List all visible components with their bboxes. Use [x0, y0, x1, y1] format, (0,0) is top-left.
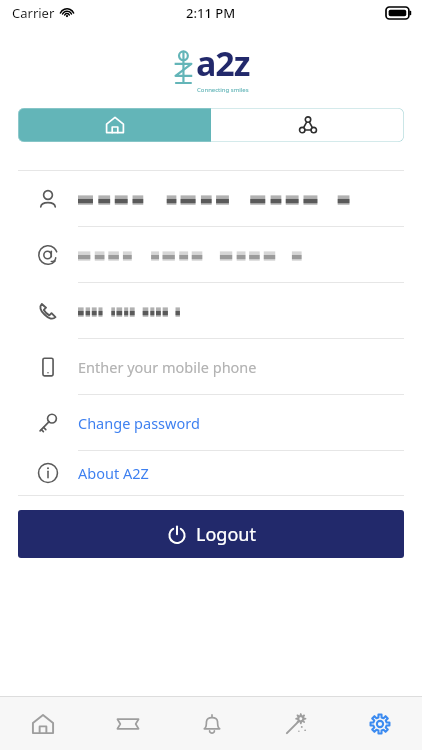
button[interactable]: Home	[0, 697, 85, 750]
staticText: Change password	[78, 413, 200, 433]
button[interactable]: Notifications	[170, 697, 254, 750]
staticText: Enther your mobile phone	[78, 357, 257, 377]
button[interactable]: Mobile phone	[18, 339, 404, 394]
button[interactable]: Change password	[18, 395, 404, 450]
button[interactable]: Settings	[338, 697, 422, 750]
staticText: About A2Z	[78, 463, 149, 483]
button[interactable]: Home	[18, 108, 211, 142]
staticText: a2z	[196, 40, 250, 86]
button[interactable]: Phone	[18, 283, 404, 338]
button[interactable]: Logout	[18, 510, 404, 558]
staticText: 2:11 PM	[186, 4, 236, 22]
button[interactable]: About A2Z	[18, 451, 404, 495]
staticText: Logout	[196, 522, 256, 547]
staticText: Connecting smiles	[197, 86, 249, 94]
other: Home	[105, 115, 125, 135]
button[interactable]: Tickets	[85, 697, 170, 750]
button[interactable]: Offers	[254, 697, 338, 750]
button[interactable]: Email	[18, 227, 404, 282]
other: Share	[299, 116, 317, 134]
staticText: Carrier	[12, 4, 55, 22]
button[interactable]: Account name	[18, 171, 404, 226]
button[interactable]: Share	[211, 108, 404, 142]
